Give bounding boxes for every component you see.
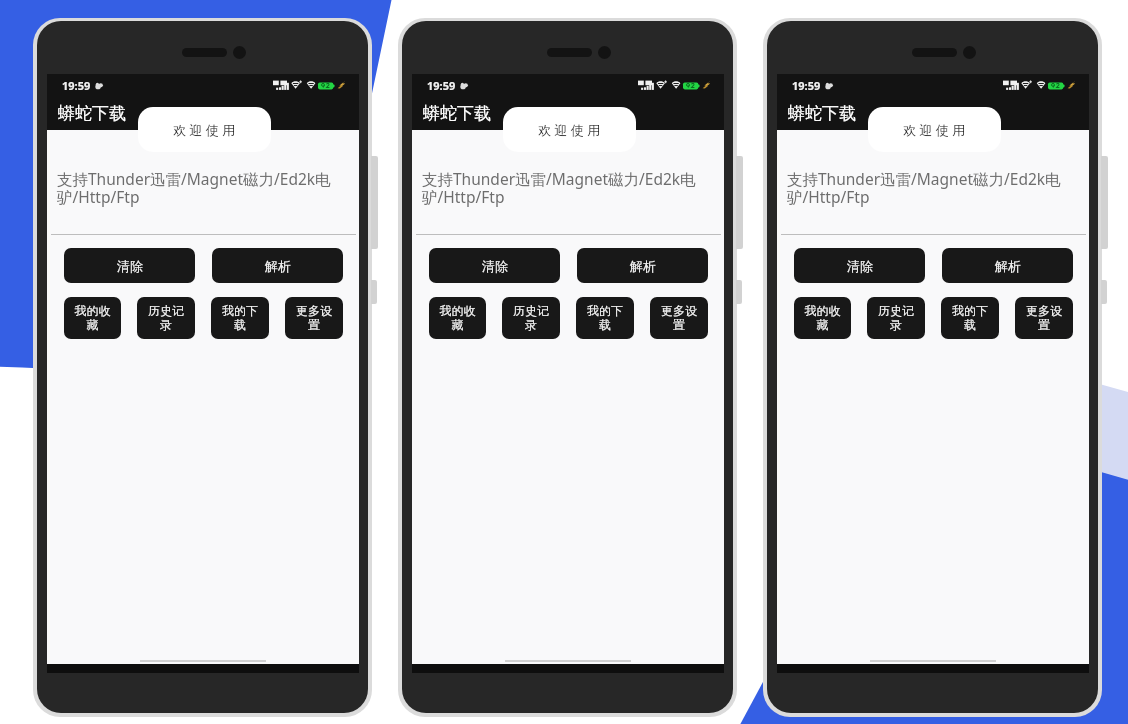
staticText: 支持Thunder迅雷/Magnet磁力/Ed2k电驴/Http/Ftp	[787, 168, 1075, 208]
staticText: 我的下载	[217, 303, 263, 333]
staticText: 我的下载	[582, 303, 628, 333]
staticText: 清除	[117, 258, 143, 274]
staticText: 历史记录	[143, 303, 189, 333]
staticText: 历史记录	[508, 303, 554, 333]
button[interactable]: 历史记录	[502, 297, 560, 339]
staticText: 蟒蛇下载	[788, 103, 856, 124]
button[interactable]: 我的下载	[576, 297, 634, 339]
button[interactable]: 欢 迎 使 用	[868, 107, 1001, 152]
button[interactable]: 清除	[64, 248, 195, 283]
staticText: 解析	[995, 258, 1021, 274]
staticText: 19:59	[427, 78, 456, 93]
staticText: 清除	[482, 258, 508, 274]
staticText: 清除	[847, 258, 873, 274]
button[interactable]: 欢 迎 使 用	[503, 107, 636, 152]
staticText: 支持Thunder迅雷/Magnet磁力/Ed2k电驴/Http/Ftp	[422, 168, 710, 208]
staticText: 更多设置	[1021, 303, 1067, 333]
button[interactable]: 解析	[942, 248, 1073, 283]
button[interactable]: 我的下载	[211, 297, 269, 339]
button[interactable]: 历史记录	[137, 297, 195, 339]
button[interactable]: 更多设置	[650, 297, 708, 339]
staticText: 我的收藏	[70, 303, 115, 333]
button[interactable]: 清除	[429, 248, 560, 283]
button[interactable]: 历史记录	[867, 297, 925, 339]
staticText: 历史记录	[873, 303, 919, 333]
staticText: 我的下载	[947, 303, 993, 333]
staticText: 更多设置	[656, 303, 702, 333]
button[interactable]: 更多设置	[285, 297, 343, 339]
button[interactable]: 更多设置	[1015, 297, 1073, 339]
staticText: 欢 迎 使 用	[173, 121, 236, 139]
button[interactable]: 解析	[577, 248, 708, 283]
staticText: 蟒蛇下载	[58, 103, 126, 124]
button[interactable]: 我的收藏	[429, 297, 486, 339]
button[interactable]: 我的收藏	[794, 297, 851, 339]
staticText: 欢 迎 使 用	[903, 121, 966, 139]
staticText: 更多设置	[291, 303, 337, 333]
button[interactable]: 欢 迎 使 用	[138, 107, 271, 152]
staticText: 蟒蛇下载	[423, 103, 491, 124]
staticText: 我的收藏	[435, 303, 480, 333]
button[interactable]: 我的下载	[941, 297, 999, 339]
staticText: 支持Thunder迅雷/Magnet磁力/Ed2k电驴/Http/Ftp	[57, 168, 345, 208]
button[interactable]: 我的收藏	[64, 297, 121, 339]
staticText: 解析	[630, 258, 656, 274]
staticText: 欢 迎 使 用	[538, 121, 601, 139]
button[interactable]: 解析	[212, 248, 343, 283]
button[interactable]: 清除	[794, 248, 925, 283]
staticText: 解析	[265, 258, 291, 274]
staticText: 19:59	[792, 78, 821, 93]
staticText: 我的收藏	[800, 303, 845, 333]
staticText: 19:59	[62, 78, 91, 93]
